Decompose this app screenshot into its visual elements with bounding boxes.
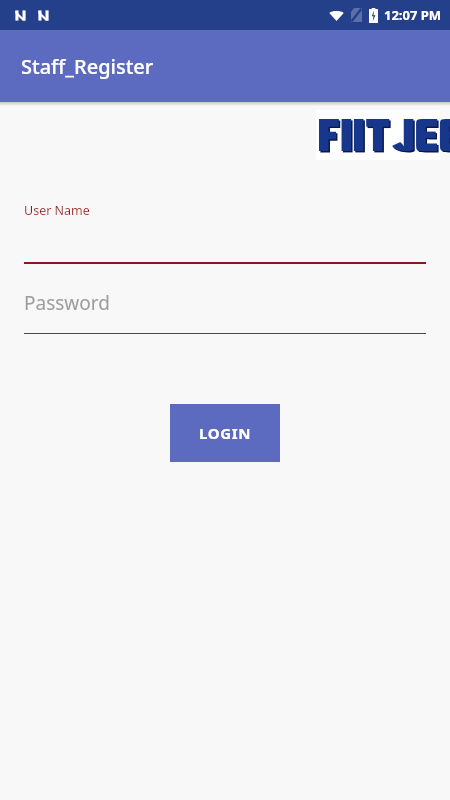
staticText: User Name <box>24 202 90 219</box>
button[interactable] <box>24 220 426 264</box>
button[interactable]: Password <box>24 288 426 334</box>
staticText: Password <box>24 290 110 316</box>
staticText: Staff_Register <box>21 53 154 80</box>
button[interactable]: LOGIN <box>170 404 280 462</box>
other: FIITJEE logo <box>319 119 437 151</box>
staticText: 12:07 PM <box>384 6 442 24</box>
staticText: LOGIN <box>199 423 251 443</box>
